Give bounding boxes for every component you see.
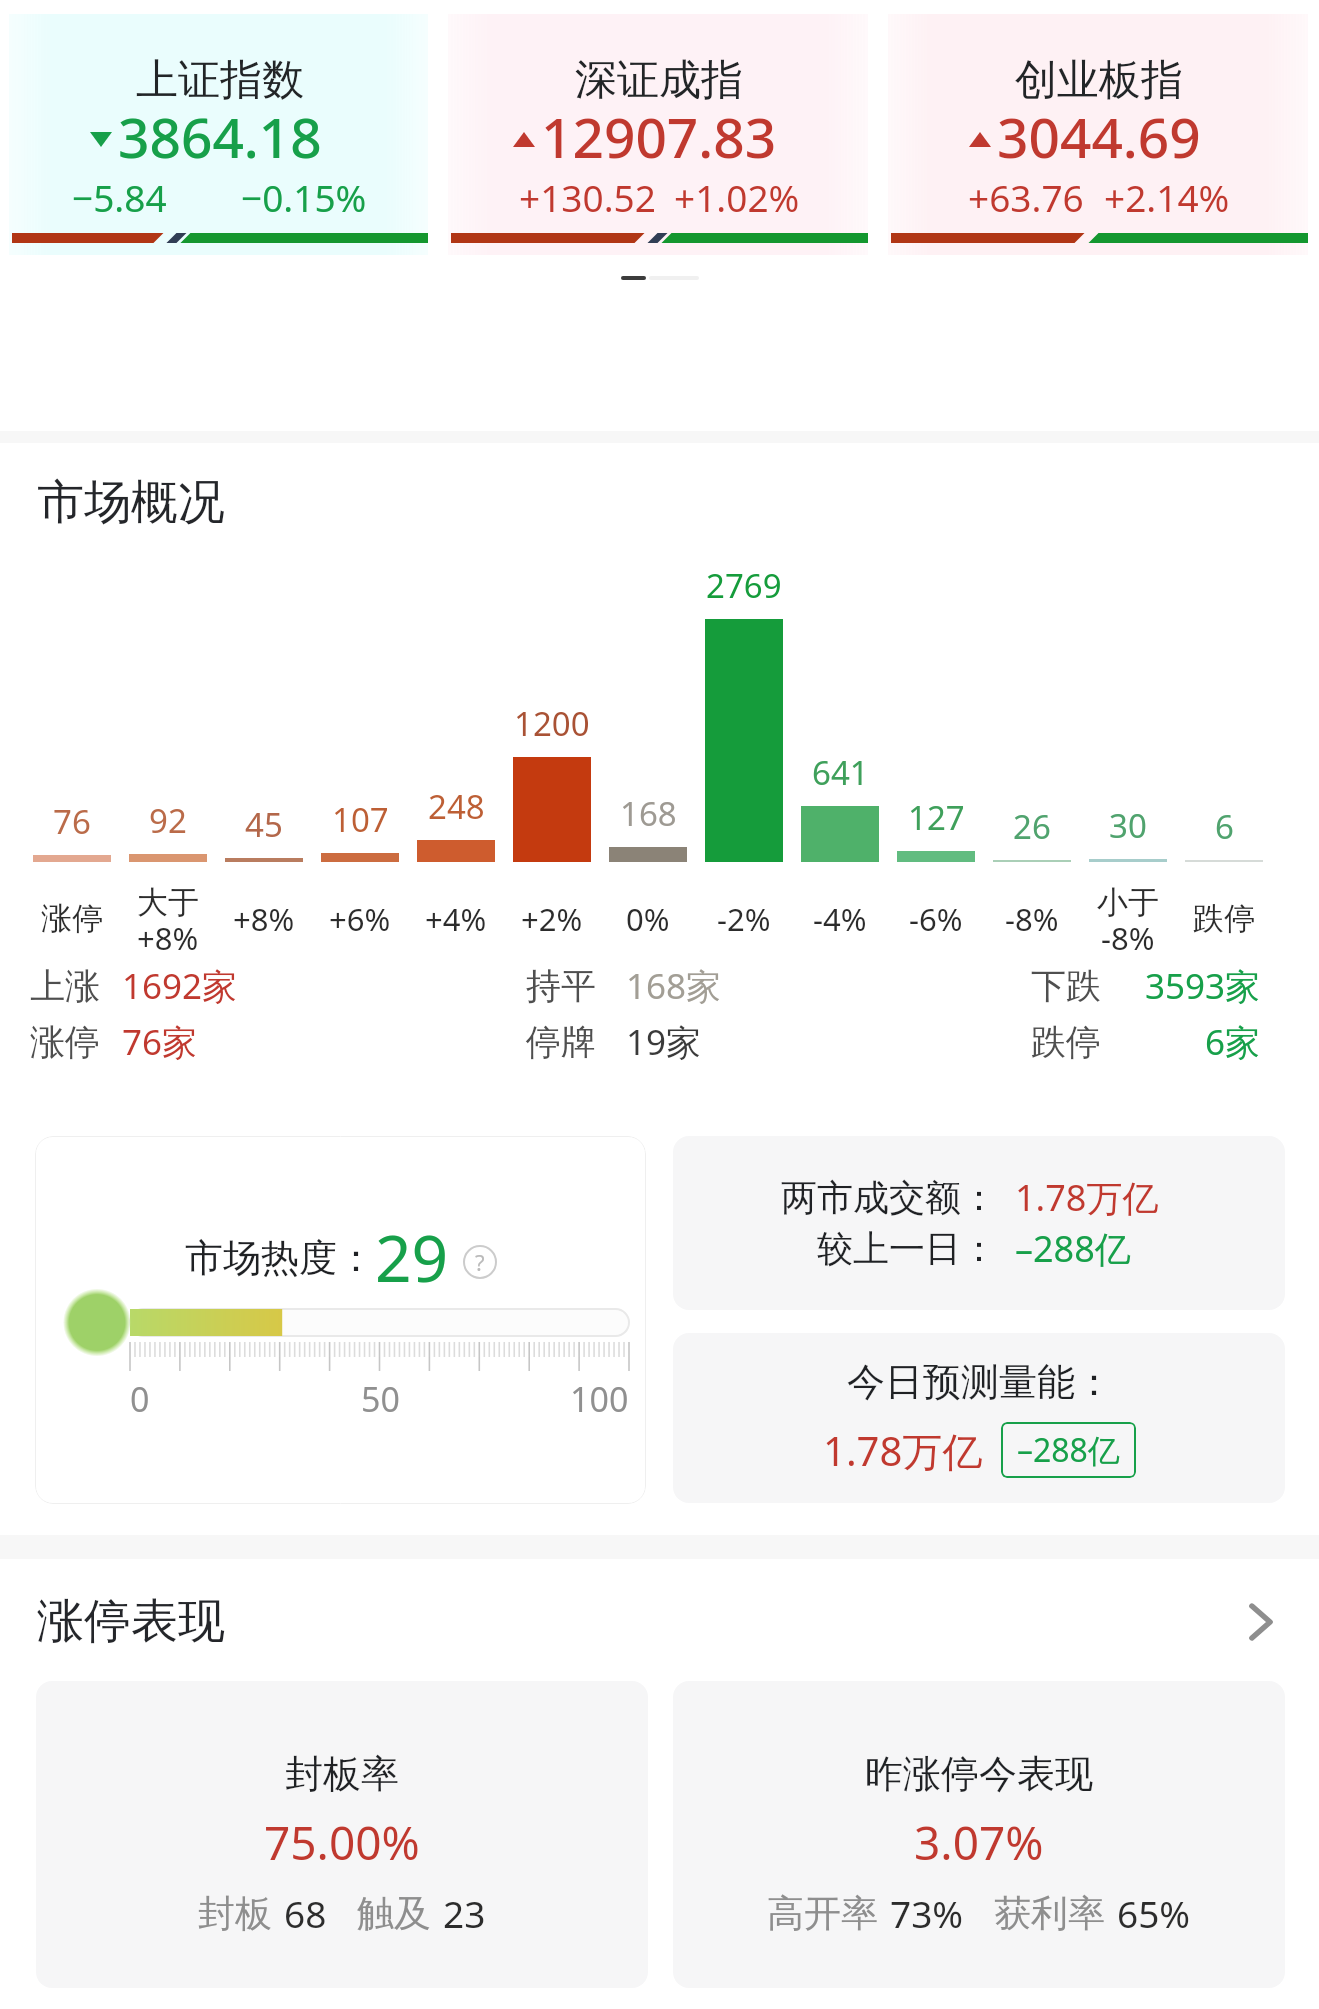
button[interactable]: 两市成交额：	[673, 1136, 1285, 1310]
staticText: 641	[812, 750, 869, 795]
staticText: 6家	[1205, 1018, 1261, 1066]
staticText: 持平	[526, 964, 596, 1008]
button[interactable]: 创业板指	[879, 0, 1319, 260]
staticText: -8%	[1005, 898, 1059, 940]
staticText: 上涨	[30, 964, 100, 1008]
button[interactable]: 市场热度：	[35, 1136, 646, 1504]
staticText: 下跌	[1031, 964, 1101, 1008]
staticText: 75.00%	[264, 1811, 420, 1874]
staticText: 深证成指	[575, 54, 743, 107]
staticText: +6%	[329, 898, 391, 940]
staticText: 3044.69	[997, 99, 1201, 174]
staticText: 两市成交额：	[781, 1175, 997, 1220]
staticText: +4%	[425, 898, 487, 940]
staticText: 停牌	[526, 1020, 596, 1064]
staticText: ?	[475, 1247, 485, 1277]
staticText: 较上一日：	[817, 1226, 997, 1271]
staticText: –288亿	[1017, 1428, 1120, 1472]
staticText: 76家	[122, 1018, 198, 1066]
staticText: 50	[361, 1376, 400, 1422]
staticText: 76	[53, 799, 91, 844]
staticText: +8%	[137, 917, 199, 957]
button[interactable]: 深证成指	[439, 0, 879, 260]
staticText: 100	[570, 1376, 629, 1422]
staticText: 248	[428, 784, 485, 829]
staticText: 触及	[357, 1890, 431, 1937]
staticText: 市场概况	[37, 473, 225, 532]
other: 查看更多	[1248, 1603, 1274, 1641]
staticText: 45	[245, 802, 283, 847]
staticText: 3.07%	[914, 1811, 1044, 1874]
staticText: 2769	[706, 563, 782, 608]
staticText: 涨停表现	[37, 1592, 225, 1651]
staticText: 今日预测量能：	[847, 1358, 1113, 1406]
staticText: 107	[332, 797, 389, 842]
button[interactable]: 上证指数	[0, 0, 439, 260]
staticText: 12907.83	[541, 99, 777, 174]
staticText: 65%	[1117, 1888, 1191, 1938]
staticText: 0	[130, 1376, 150, 1422]
staticText: +130.52	[519, 172, 656, 222]
staticText: 29	[375, 1214, 449, 1301]
staticText: 3593家	[1145, 962, 1261, 1010]
staticText: 创业板指	[1015, 54, 1183, 107]
staticText: +8%	[233, 898, 295, 940]
staticText: 6	[1215, 804, 1234, 849]
staticText: −0.15%	[241, 172, 367, 222]
staticText: 涨停	[41, 899, 103, 938]
staticText: 1.78万亿	[1015, 1173, 1159, 1222]
staticText: 1200	[514, 701, 590, 746]
staticText: +2%	[521, 898, 583, 940]
staticText: +1.02%	[674, 172, 800, 222]
staticText: 高开率	[767, 1890, 878, 1937]
staticText: −5.84	[72, 172, 167, 222]
staticText: 23	[443, 1888, 486, 1938]
staticText: 封板率	[285, 1750, 399, 1798]
button[interactable]: 昨涨停今表现	[673, 1681, 1285, 1988]
staticText: 0%	[626, 898, 670, 940]
staticText: 上证指数	[136, 54, 304, 107]
staticText: +2.14%	[1104, 172, 1230, 222]
staticText: 跌停	[1031, 1020, 1101, 1064]
staticText: 3864.18	[118, 99, 322, 174]
staticText: 168家	[626, 962, 722, 1010]
staticText: -6%	[909, 898, 963, 940]
staticText: 168	[620, 791, 677, 836]
button[interactable]: 封板率	[36, 1681, 648, 1988]
staticText: 1.78万亿	[823, 1423, 983, 1478]
staticText: 市场热度：	[185, 1234, 375, 1282]
staticText: –288亿	[1015, 1224, 1131, 1273]
staticText: 小于	[1097, 883, 1159, 922]
button[interactable]: 涨停表现	[37, 1592, 1274, 1651]
staticText: 68	[284, 1888, 327, 1938]
staticText: 昨涨停今表现	[865, 1750, 1093, 1798]
staticText: 大于	[137, 883, 199, 922]
staticText: 跌停	[1193, 899, 1255, 938]
staticText: -4%	[813, 898, 867, 940]
staticText: -8%	[1101, 917, 1155, 957]
staticText: 19家	[626, 1018, 702, 1066]
staticText: -2%	[717, 898, 771, 940]
staticText: 封板	[198, 1890, 272, 1937]
staticText: 30	[1109, 803, 1147, 848]
staticText: +63.76	[968, 172, 1084, 222]
staticText: 127	[908, 795, 965, 840]
staticText: 73%	[890, 1888, 964, 1938]
staticText: 92	[149, 798, 187, 843]
staticText: 26	[1013, 804, 1051, 849]
button[interactable]: 今日预测量能：	[673, 1333, 1285, 1503]
staticText: 获利率	[994, 1890, 1105, 1937]
staticText: 涨停	[30, 1020, 100, 1064]
staticText: 1692家	[122, 962, 238, 1010]
